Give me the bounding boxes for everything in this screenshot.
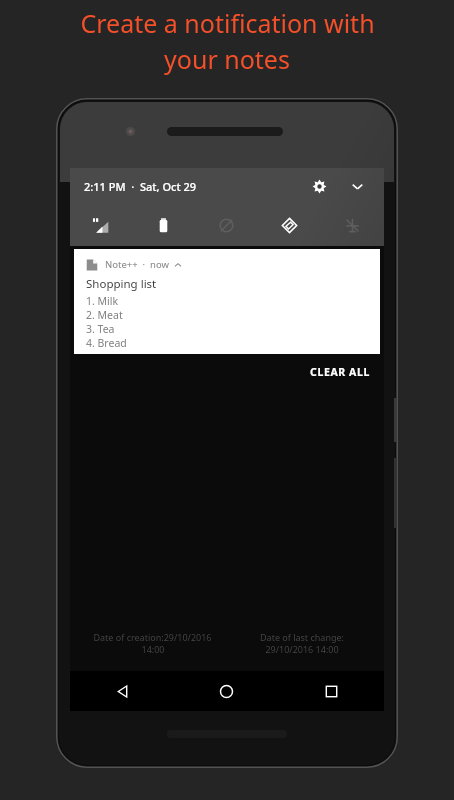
button[interactable]: Settings (306, 173, 332, 199)
staticText: your notes (164, 42, 290, 76)
button[interactable]: Battery (132, 204, 195, 246)
staticText: 3. Tea (86, 322, 115, 336)
staticText: 2:11 PM · Sat, Oct 29 (84, 179, 197, 194)
staticText: Date of creation:29/10/2016 (93, 631, 212, 643)
button[interactable]: Recent apps (279, 671, 384, 711)
button[interactable]: Auto rotate (258, 204, 321, 246)
staticText: Note++ · now (105, 258, 169, 271)
staticText: Date of last change: (260, 631, 344, 643)
button[interactable]: Airplane mode (321, 204, 384, 246)
button[interactable]: Note++ · now (74, 249, 380, 354)
staticText: 4. Bread (86, 336, 127, 350)
staticText: 1. Milk (86, 294, 119, 308)
staticText: 2. Meat (86, 308, 123, 322)
staticText: CLEAR ALL (310, 365, 370, 379)
button[interactable]: Home (174, 671, 279, 711)
staticText: 14:00 (141, 643, 165, 655)
staticText: 29/10/2016 14:00 (265, 643, 339, 655)
staticText: Shopping list (86, 276, 157, 292)
button[interactable]: CLEAR ALL (296, 359, 384, 385)
button[interactable]: Expand quick settings (344, 173, 370, 199)
staticText: Create a notification with (80, 6, 375, 40)
button[interactable]: Mobile data 4G (70, 204, 132, 246)
button[interactable]: Back (70, 671, 174, 711)
